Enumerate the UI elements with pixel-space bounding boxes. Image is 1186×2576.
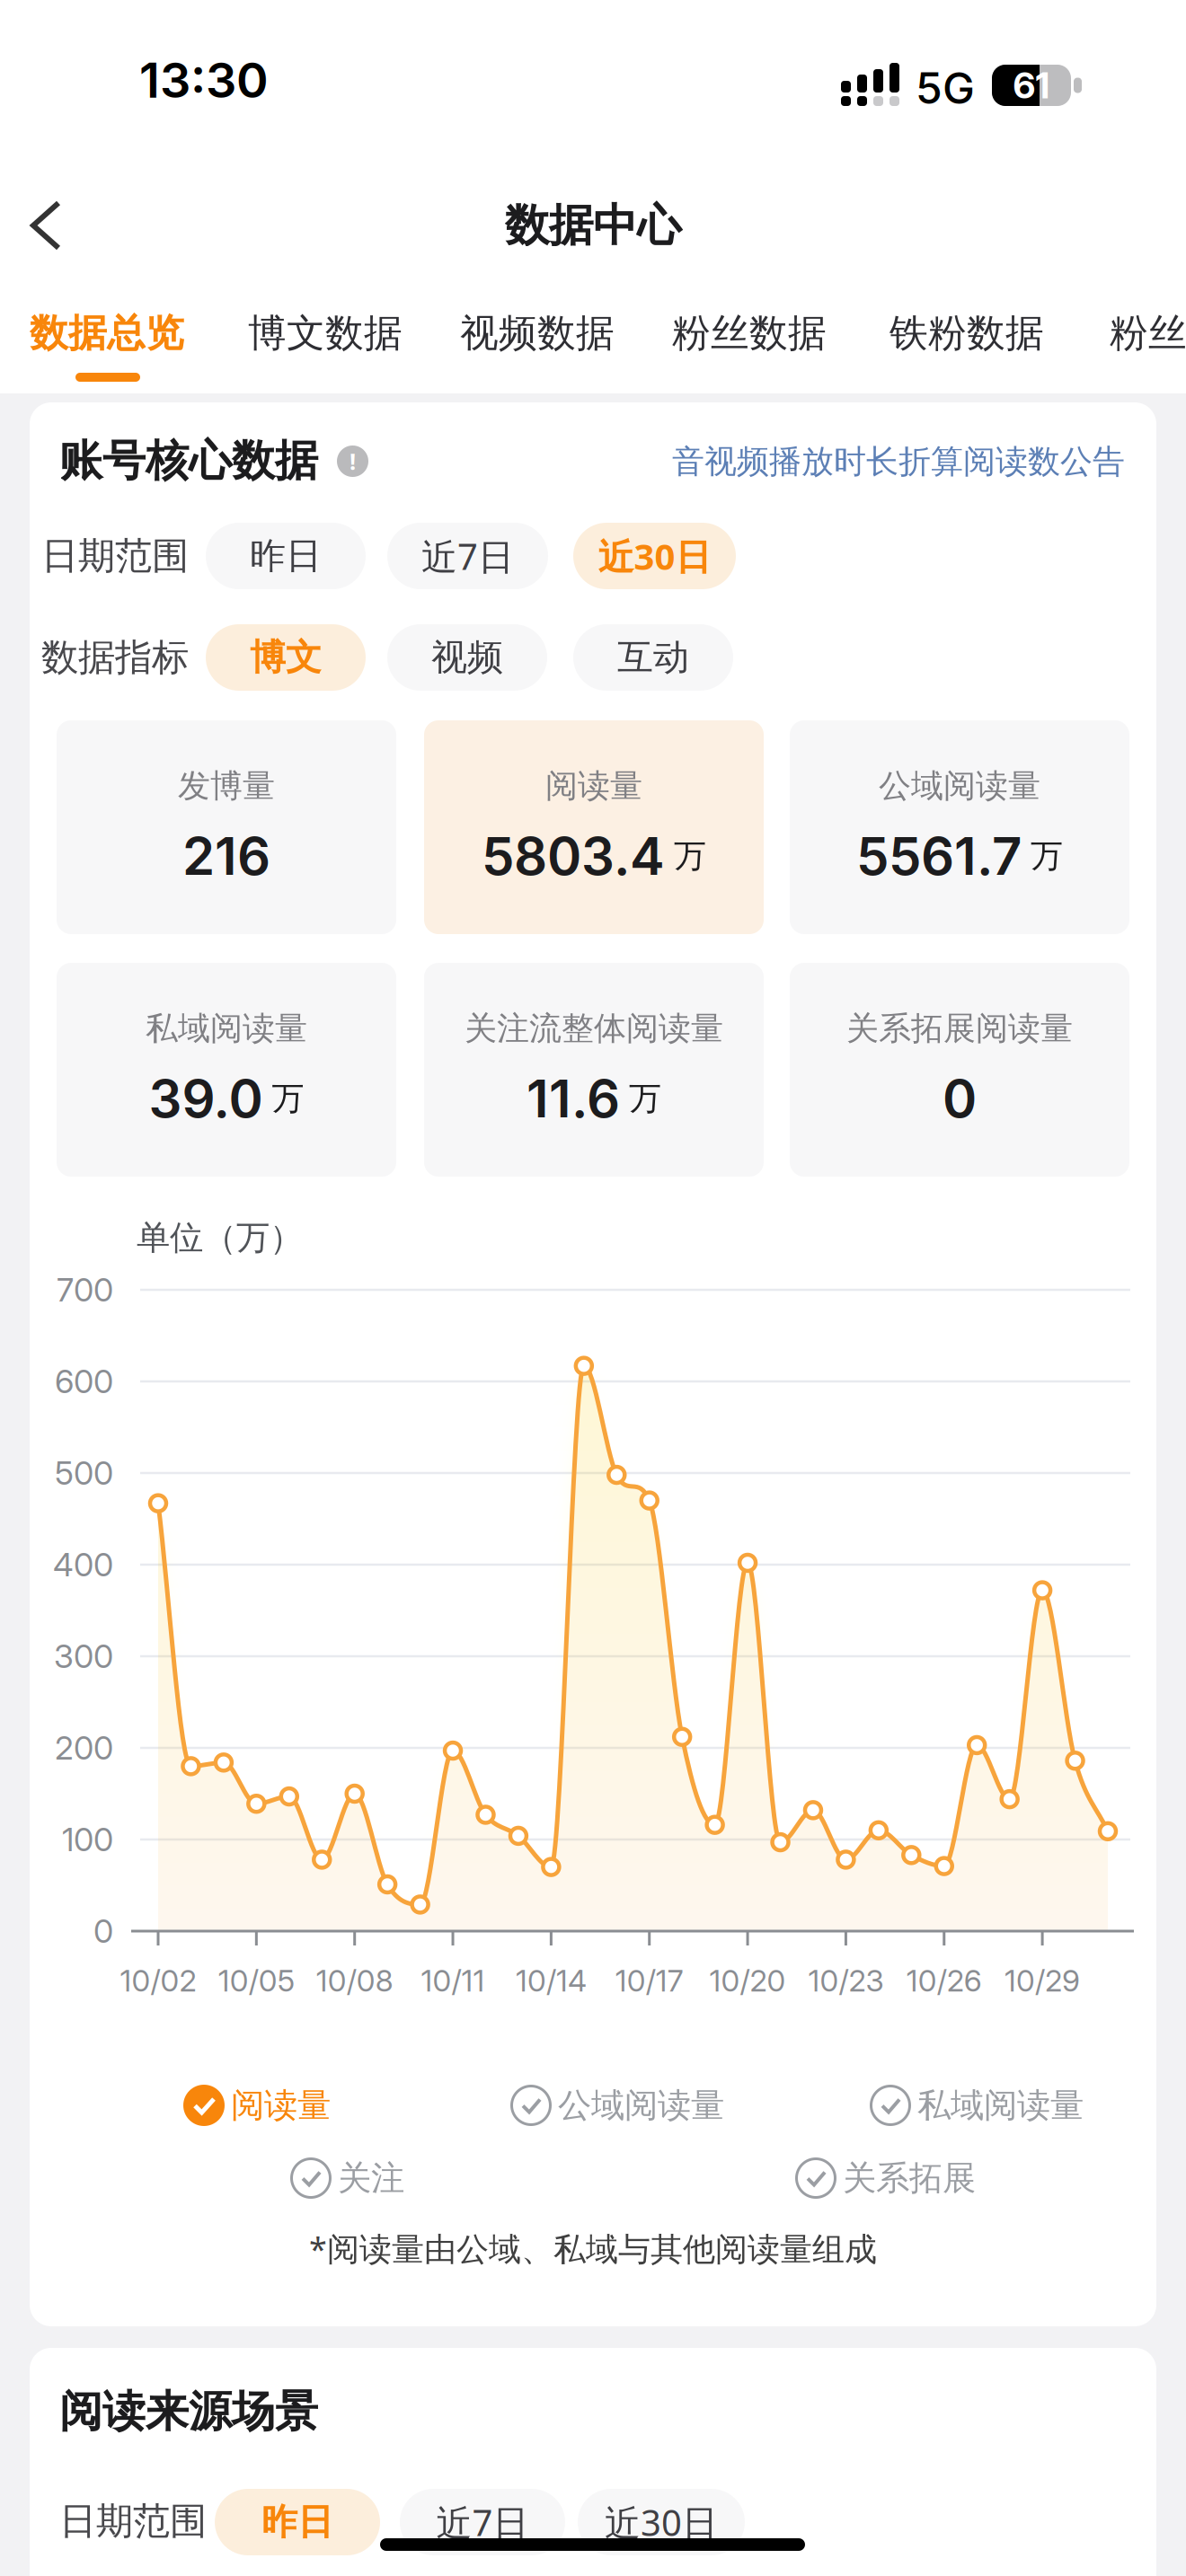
staticText: 音视频播放时长折算阅读数公告 xyxy=(672,442,1125,482)
button[interactable]: Info xyxy=(337,446,368,477)
staticText: 单位（万） xyxy=(137,1217,303,1258)
button[interactable]: 私域阅读量 xyxy=(870,2085,1084,2126)
staticText: 数据总览 xyxy=(30,310,184,357)
staticText: 账号核心数据 xyxy=(59,434,318,487)
staticText: 数据指标 xyxy=(41,635,189,680)
button[interactable]: 关注流整体阅读量 xyxy=(424,963,764,1177)
staticText: 5803.4 xyxy=(482,824,665,887)
staticText: 关系拓展阅读量 xyxy=(846,1009,1073,1048)
button[interactable]: 近30日 xyxy=(578,2489,745,2555)
staticText: 近7日 xyxy=(436,2498,529,2546)
button[interactable]: 博文数据 xyxy=(248,306,403,360)
button[interactable]: 近30日 xyxy=(573,523,736,589)
staticText: 日期范围 xyxy=(59,2498,207,2544)
button[interactable]: Back xyxy=(31,200,66,252)
staticText: 0 xyxy=(93,1912,113,1951)
button[interactable]: 关系拓展阅读量 xyxy=(790,963,1129,1177)
staticText: 10/05 xyxy=(218,1962,295,1999)
staticText: 10/11 xyxy=(421,1962,485,1999)
button[interactable]: 近7日 xyxy=(387,523,548,589)
staticText: 私域阅读量 xyxy=(146,1009,307,1048)
button[interactable]: 公域阅读量 xyxy=(790,720,1129,934)
staticText: 500 xyxy=(55,1453,113,1493)
staticText: 公域阅读量 xyxy=(879,766,1040,806)
staticText: 阅读来源场景 xyxy=(59,2385,318,2438)
button[interactable]: 数据总览 xyxy=(30,306,184,360)
staticText: 300 xyxy=(54,1637,113,1676)
staticText: 400 xyxy=(53,1545,113,1584)
button[interactable]: 互动 xyxy=(573,624,733,691)
staticText: 61 xyxy=(1013,64,1050,107)
staticText: 公域阅读量 xyxy=(558,2085,724,2126)
staticText: 万 xyxy=(272,1079,304,1118)
staticText: 视频数据 xyxy=(460,310,615,357)
staticText: 近7日 xyxy=(421,532,514,580)
staticText: 10/20 xyxy=(709,1962,786,1999)
staticText: 5G xyxy=(916,62,975,114)
staticText: 互动 xyxy=(617,635,689,679)
staticText: 10/14 xyxy=(516,1962,587,1999)
staticText: 216 xyxy=(182,824,270,887)
staticText: 粉丝数据 xyxy=(672,310,827,357)
button[interactable]: 粉丝数据 xyxy=(672,306,827,360)
staticText: 阅读量 xyxy=(545,766,642,806)
staticText: 700 xyxy=(57,1270,113,1309)
staticText: 10/17 xyxy=(615,1962,683,1999)
staticText: 博文数据 xyxy=(248,310,403,357)
button[interactable]: 昨日 xyxy=(215,2489,380,2555)
staticText: 11.6 xyxy=(527,1067,620,1130)
button[interactable]: 阅读量 xyxy=(424,720,764,934)
staticText: 10/02 xyxy=(120,1962,196,1999)
staticText: *阅读量由公域、私域与其他阅读量组成 xyxy=(309,2227,877,2270)
staticText: 关注 xyxy=(338,2158,404,2199)
staticText: 39.0 xyxy=(149,1067,263,1130)
button[interactable]: 视频 xyxy=(387,624,547,691)
staticText: 200 xyxy=(55,1728,113,1767)
staticText: 粉丝 xyxy=(1110,310,1186,357)
staticText: 博文 xyxy=(250,635,322,679)
staticText: 10/08 xyxy=(316,1962,393,1999)
staticText: 发博量 xyxy=(178,766,275,806)
button[interactable]: 关系拓展 xyxy=(795,2157,976,2199)
button[interactable]: 阅读量 xyxy=(183,2085,331,2126)
staticText: 0 xyxy=(943,1067,977,1130)
staticText: 万 xyxy=(629,1079,661,1118)
button[interactable]: 公域阅读量 xyxy=(510,2085,724,2126)
staticText: 5561.7 xyxy=(856,824,1022,887)
button[interactable]: 私域阅读量 xyxy=(57,963,396,1177)
staticText: 视频 xyxy=(431,635,503,679)
staticText: 关注流整体阅读量 xyxy=(465,1009,723,1048)
staticText: 近30日 xyxy=(598,532,711,580)
staticText: 私域阅读量 xyxy=(917,2085,1084,2126)
staticText: 13:30 xyxy=(139,51,269,109)
staticText: ! xyxy=(350,446,356,476)
staticText: 昨日 xyxy=(261,2500,333,2544)
staticText: 铁粉数据 xyxy=(889,310,1044,357)
staticText: 10/26 xyxy=(906,1962,982,1999)
staticText: 近30日 xyxy=(605,2498,718,2546)
button[interactable]: 视频数据 xyxy=(460,306,615,360)
button[interactable]: 音视频播放时长折算阅读数公告 xyxy=(622,439,1125,484)
staticText: 日期范围 xyxy=(41,533,189,579)
button[interactable]: 关注 xyxy=(290,2157,404,2199)
button[interactable]: 粉丝 xyxy=(1110,306,1186,360)
staticText: 10/23 xyxy=(808,1962,884,1999)
staticText: 万 xyxy=(1031,836,1063,876)
staticText: 万 xyxy=(674,836,706,876)
button[interactable]: 铁粉数据 xyxy=(889,306,1044,360)
button[interactable]: 博文 xyxy=(206,624,366,691)
staticText: 阅读量 xyxy=(231,2085,331,2126)
staticText: 100 xyxy=(62,1820,113,1859)
button[interactable]: 昨日 xyxy=(206,523,366,589)
staticText: 关系拓展 xyxy=(843,2158,976,2199)
button[interactable]: 发博量 xyxy=(57,720,396,934)
staticText: 600 xyxy=(55,1362,113,1401)
button[interactable]: 近7日 xyxy=(400,2489,565,2555)
staticText: 昨日 xyxy=(250,534,322,578)
staticText: 10/29 xyxy=(1005,1962,1080,1999)
staticText: 数据中心 xyxy=(505,198,681,253)
